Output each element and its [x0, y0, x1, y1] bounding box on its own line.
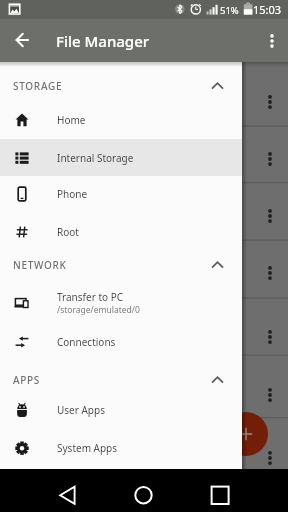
staticText: 15:03 — [253, 2, 282, 17]
button[interactable]: Internal Storage — [0, 139, 242, 176]
button[interactable]: Phone — [0, 175, 242, 212]
button[interactable] — [260, 31, 280, 51]
staticText: APPS — [13, 373, 41, 387]
staticText: System Apps — [57, 441, 118, 455]
button[interactable]: STORAGE — [0, 67, 242, 104]
staticText: 51% — [220, 4, 239, 17]
button[interactable]: User Apps — [0, 391, 242, 428]
staticText: Connections — [57, 335, 116, 349]
button[interactable] — [133, 484, 155, 506]
button[interactable]: Root — [0, 213, 242, 250]
staticText: Internal Storage — [57, 151, 134, 165]
staticText: Root — [57, 225, 79, 239]
staticText: User Apps — [57, 403, 105, 417]
staticText: Home — [57, 113, 86, 127]
button[interactable]: Home — [0, 101, 242, 138]
staticText: STORAGE — [13, 79, 63, 93]
staticText: File Manager — [56, 31, 150, 51]
staticText: NETWORK — [13, 258, 67, 272]
button[interactable]: Transfer to PC — [0, 284, 242, 321]
staticText: /storage/emulated/0 — [57, 304, 140, 316]
staticText: Transfer to PC — [57, 290, 124, 304]
button[interactable] — [57, 484, 79, 506]
button[interactable]: APPS — [0, 361, 242, 398]
button[interactable]: Connections — [0, 323, 242, 360]
button[interactable] — [224, 412, 268, 456]
button[interactable]: System Apps — [0, 429, 242, 466]
button[interactable] — [12, 30, 32, 50]
staticText: Phone — [57, 187, 88, 201]
button[interactable] — [209, 484, 231, 506]
button[interactable]: NETWORK — [0, 246, 242, 283]
